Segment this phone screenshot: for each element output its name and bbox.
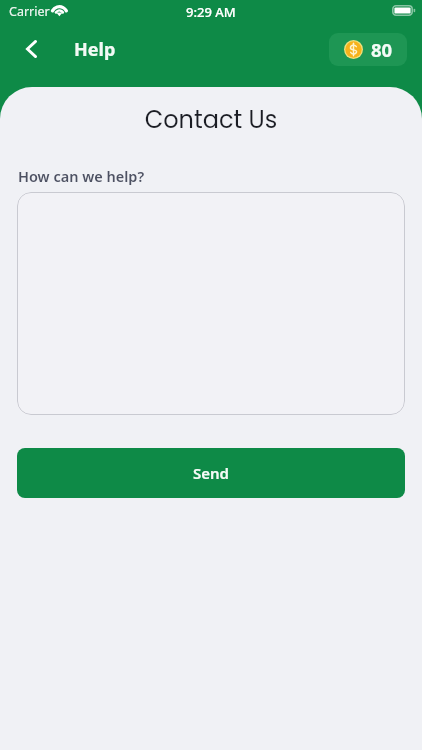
staticText: 9:29 AM: [186, 3, 236, 21]
button[interactable]: Message input: [17, 192, 405, 415]
staticText: How can we help?: [18, 166, 145, 186]
button[interactable]: 80: [329, 33, 407, 66]
staticText: Help: [74, 37, 116, 62]
button[interactable]: Send: [17, 448, 405, 498]
staticText: Send: [193, 463, 229, 483]
staticText: Carrier: [9, 3, 50, 20]
staticText: Contact Us: [0, 103, 422, 137]
staticText: 80: [371, 37, 393, 62]
button[interactable]: Back: [11, 29, 51, 69]
